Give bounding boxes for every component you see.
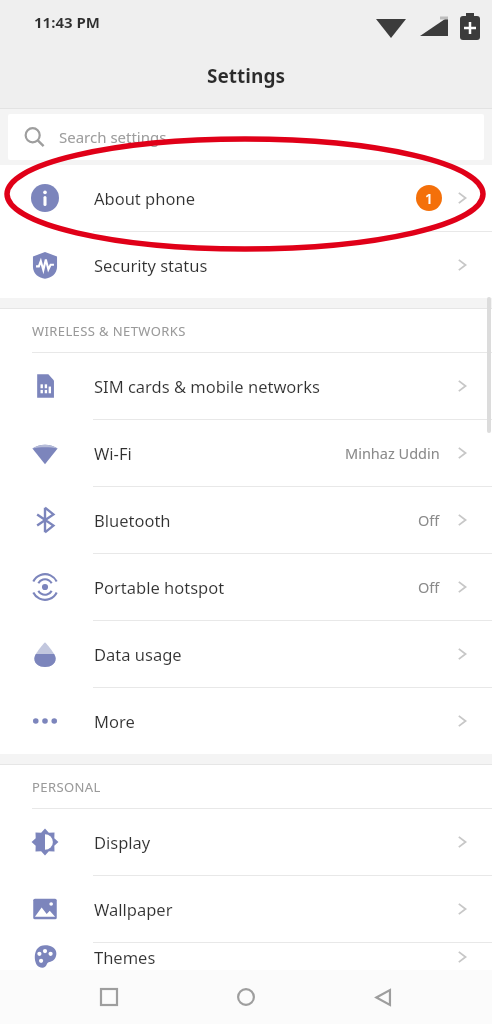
button[interactable]: Search settings: [8, 114, 484, 160]
staticText: Data usage: [94, 643, 454, 665]
button[interactable]: Portable hotspot: [0, 554, 492, 620]
staticText: Minhaz Uddin: [345, 443, 440, 463]
button[interactable]: Bluetooth: [0, 487, 492, 553]
staticText: 11:43 PM: [34, 12, 100, 32]
staticText: About phone: [94, 187, 416, 209]
button[interactable]: About phone: [0, 165, 492, 231]
button[interactable]: Data usage: [0, 621, 492, 687]
staticText: Display: [94, 831, 454, 853]
staticText: Themes: [94, 946, 454, 968]
staticText: WIRELESS & NETWORKS: [32, 322, 186, 340]
button[interactable]: Recent apps: [85, 973, 133, 1021]
staticText: Wi-Fi: [94, 442, 345, 464]
button[interactable]: Back: [359, 973, 407, 1021]
staticText: 1: [425, 189, 434, 208]
staticText: Bluetooth: [94, 509, 418, 531]
button[interactable]: Wi-Fi: [0, 420, 492, 486]
button[interactable]: More: [0, 688, 492, 754]
staticText: Search settings: [59, 127, 167, 147]
staticText: SIM cards & mobile networks: [94, 375, 454, 397]
button[interactable]: Wallpaper: [0, 876, 492, 942]
staticText: Security status: [94, 254, 454, 276]
staticText: More: [94, 710, 454, 732]
staticText: PERSONAL: [32, 778, 101, 796]
button[interactable]: Security status: [0, 232, 492, 298]
staticText: Settings: [207, 63, 285, 89]
button[interactable]: Display: [0, 809, 492, 875]
staticText: Portable hotspot: [94, 576, 418, 598]
staticText: Off: [418, 510, 440, 530]
staticText: Off: [418, 577, 440, 597]
button[interactable]: Home: [222, 973, 270, 1021]
button[interactable]: SIM cards & mobile networks: [0, 353, 492, 419]
staticText: Wallpaper: [94, 898, 454, 920]
button[interactable]: Themes: [0, 943, 492, 970]
